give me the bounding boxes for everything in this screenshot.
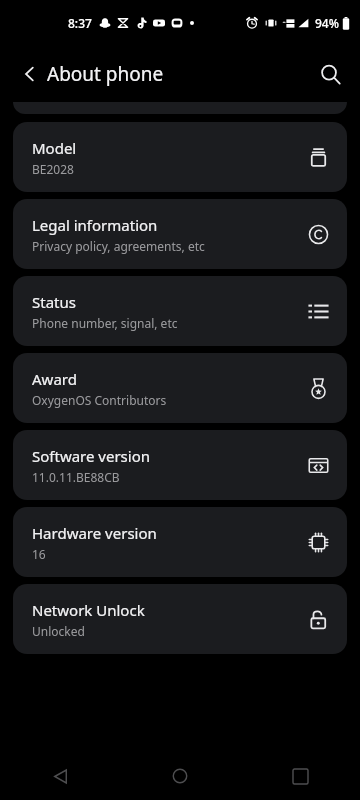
button[interactable]: Network Unlock — [13, 584, 347, 654]
staticText: About phone — [47, 61, 164, 87]
button[interactable]: Software version — [13, 430, 347, 500]
staticText: Privacy policy, agreements, etc — [32, 238, 205, 254]
button[interactable]: Legal information — [13, 199, 347, 269]
button[interactable]: Back — [8, 52, 52, 96]
staticText: BE2028 — [32, 161, 74, 177]
button[interactable]: Award — [13, 353, 347, 423]
staticText: Unlocked — [32, 623, 85, 639]
button[interactable]: Status — [13, 276, 347, 346]
button[interactable]: Recents — [240, 752, 360, 800]
button[interactable]: Back — [0, 752, 120, 800]
staticText: 11.0.11.BE88CB — [32, 469, 120, 485]
button[interactable]: Model — [13, 122, 347, 192]
staticText: 94% — [315, 15, 339, 31]
button[interactable]: Hardware version — [13, 507, 347, 577]
staticText: Status — [32, 292, 76, 312]
staticText: Award — [32, 369, 77, 389]
staticText: Model — [32, 138, 77, 158]
staticText: OxygenOS Contributors — [32, 392, 167, 408]
button[interactable] — [13, 102, 347, 114]
staticText: Legal information — [32, 215, 158, 235]
button[interactable]: Search — [308, 52, 352, 96]
staticText: Phone number, signal, etc — [32, 315, 178, 331]
staticText: 8:37 — [68, 15, 92, 31]
staticText: Hardware version — [32, 523, 157, 543]
button[interactable]: Home — [120, 752, 240, 800]
staticText: Software version — [32, 446, 151, 466]
staticText: 16 — [32, 546, 46, 562]
staticText: Network Unlock — [32, 600, 145, 620]
